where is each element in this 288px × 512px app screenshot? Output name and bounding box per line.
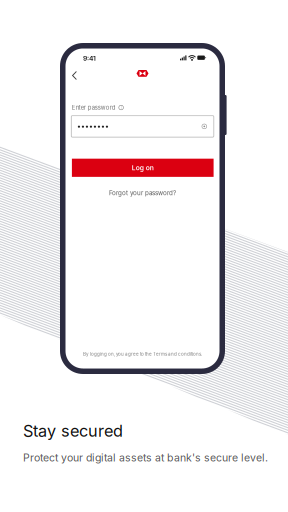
staticText: i [121,105,122,110]
staticText: Log on [132,164,154,172]
staticText: Stay secured [23,421,123,441]
button[interactable]: Log on [72,159,214,177]
staticText: Enter password [72,104,116,111]
button[interactable]: Show password [200,122,209,131]
button[interactable]: By logging on, you agree to the Terms an… [65,350,219,358]
staticText: By logging on, you agree to the Terms an… [83,351,202,357]
button[interactable]: Forgot your password? [65,188,219,198]
staticText: Forgot your password? [109,189,176,197]
button[interactable]: Back [68,67,81,83]
staticText: Protect your digital assets at bank's se… [23,451,268,464]
staticText: 9:41 [83,54,96,62]
staticText: •••••••• [77,122,109,130]
